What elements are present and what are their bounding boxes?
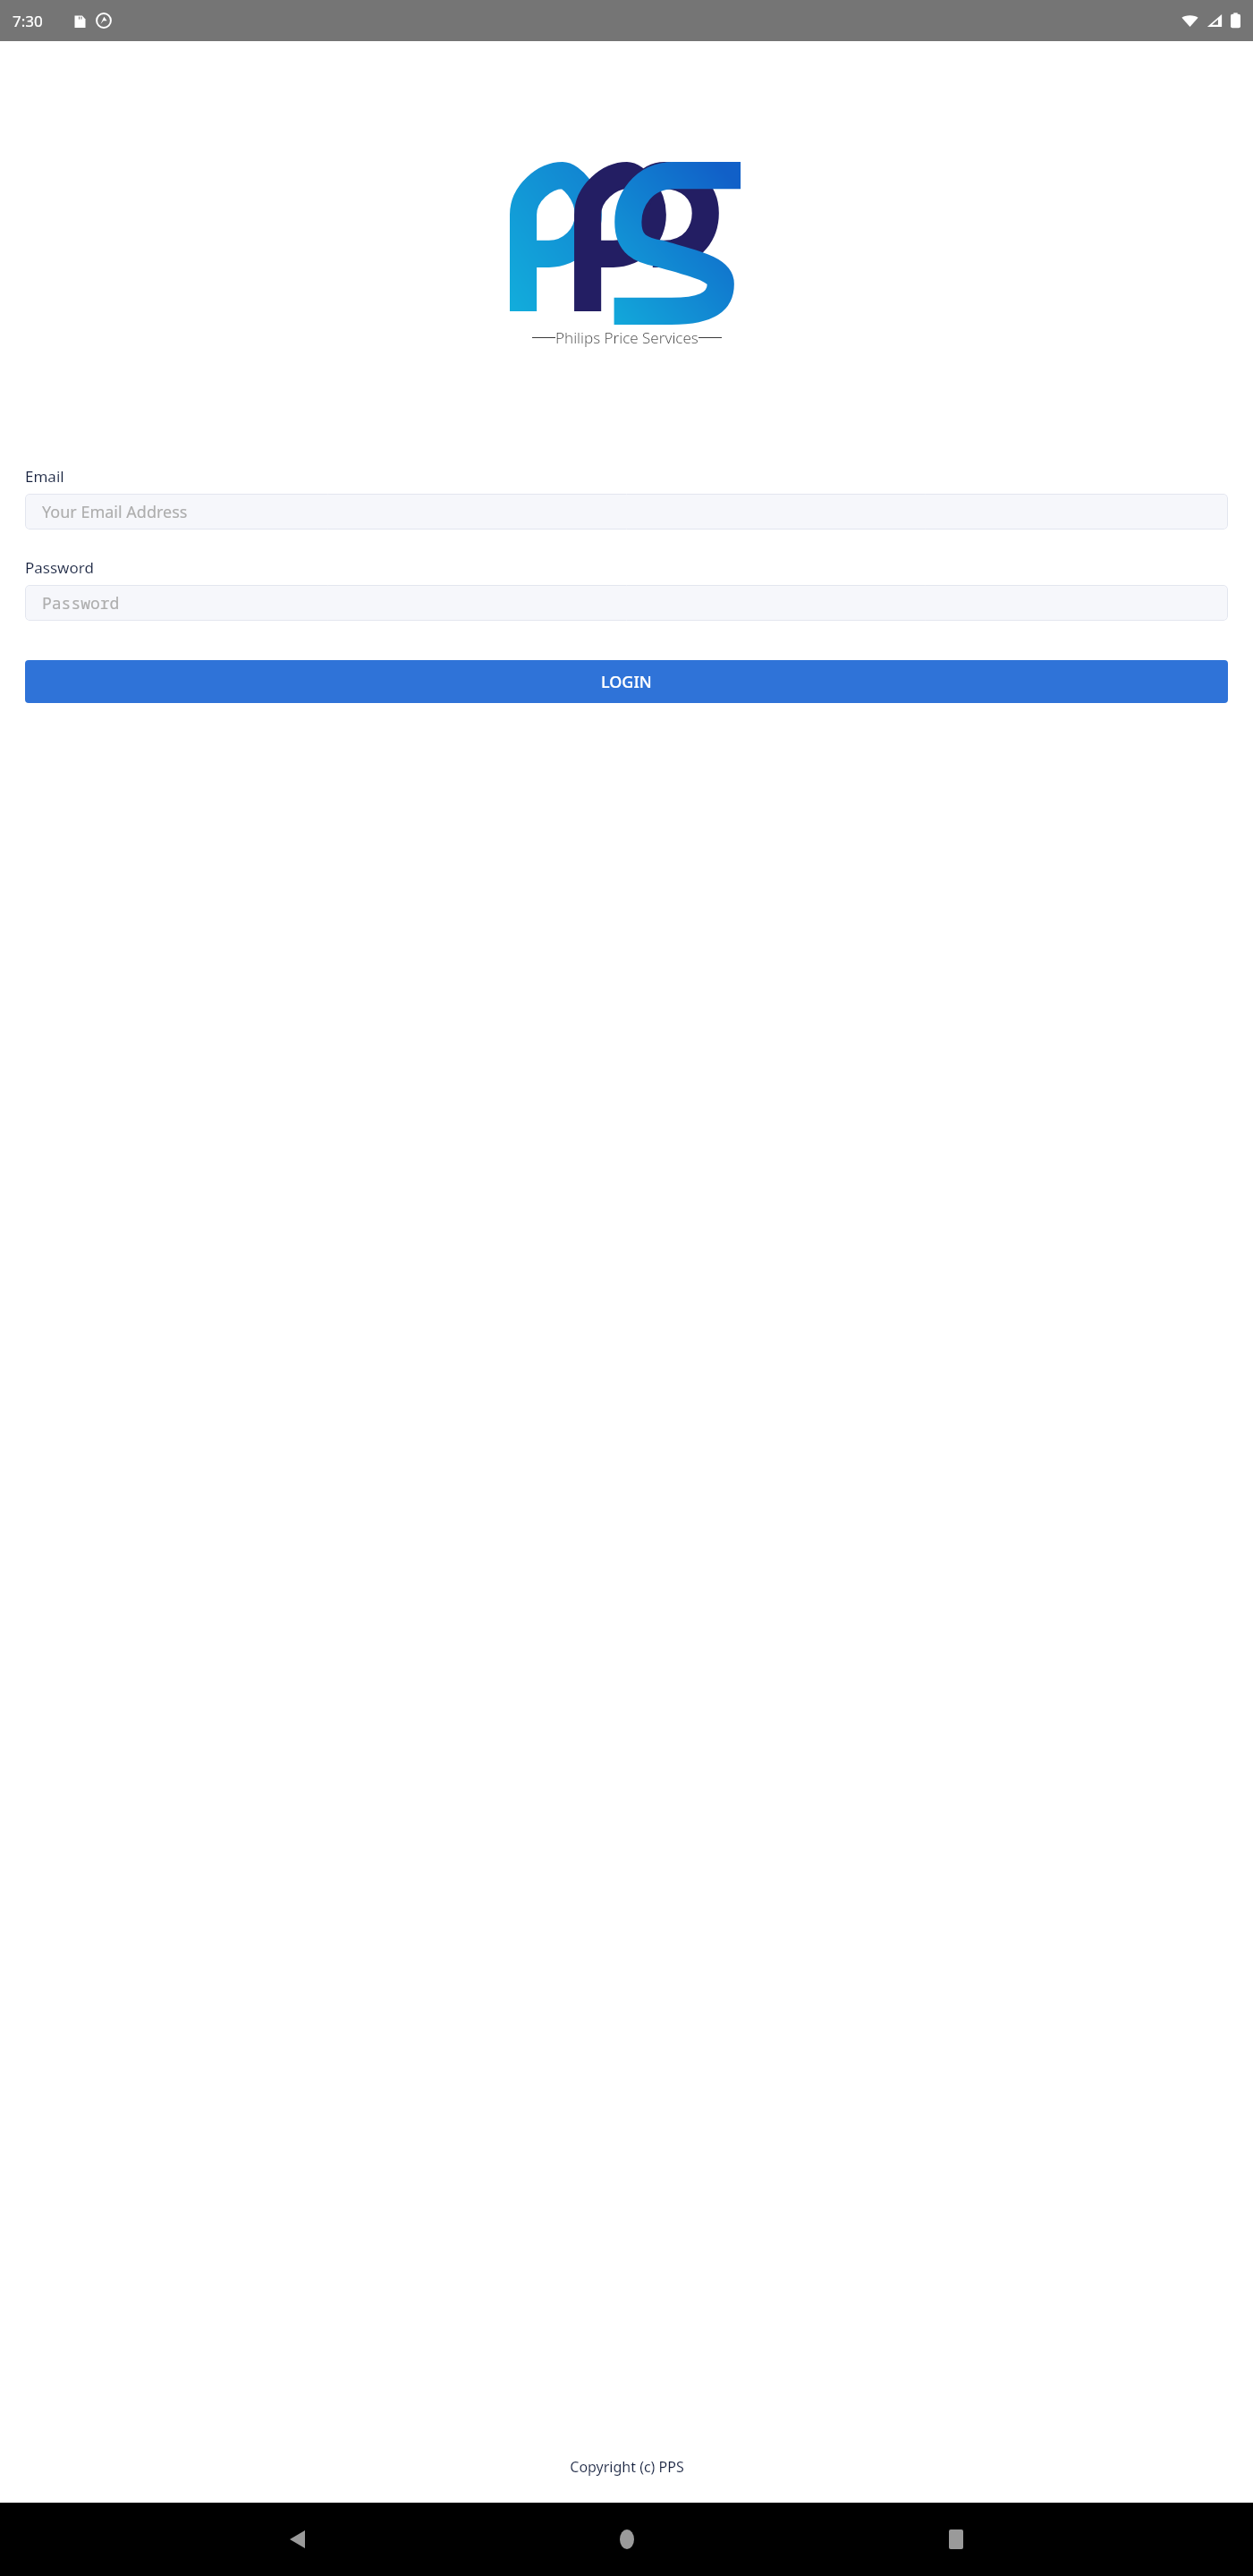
staticText: Your Email Address: [42, 501, 188, 523]
staticText: Email: [25, 466, 64, 487]
button[interactable]: Back: [265, 2507, 329, 2572]
button[interactable]: Your Email Address: [25, 494, 1228, 530]
staticText: Copyright (c) PPS: [570, 2457, 684, 2477]
button[interactable]: Home: [595, 2507, 659, 2572]
staticText: Password: [42, 592, 120, 614]
staticText: Password: [25, 557, 94, 578]
staticText: LOGIN: [601, 671, 652, 693]
button[interactable]: Password: [25, 585, 1228, 621]
staticText: Philips Price Services: [555, 327, 698, 348]
button[interactable]: Recent apps: [924, 2507, 988, 2572]
staticText: 7:30: [13, 11, 43, 31]
button[interactable]: LOGIN: [25, 660, 1228, 703]
